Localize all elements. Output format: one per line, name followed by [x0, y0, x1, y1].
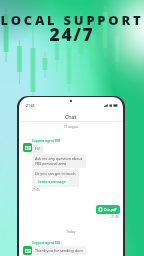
other: Support agent avatar	[23, 246, 32, 255]
staticText: Support agent FBS	[32, 241, 61, 245]
staticText: 10 august	[19, 125, 123, 129]
staticText: Ask me any question about FBS personal a…	[35, 156, 83, 166]
staticText: 21:45	[26, 103, 35, 108]
staticText: 24/7	[0, 22, 144, 46]
staticText: 21:46	[19, 215, 119, 219]
staticText: Chat	[65, 113, 77, 120]
other: Document	[98, 207, 103, 212]
staticText: LOCAL SUPPORT	[0, 11, 144, 29]
button[interactable]: Document	[96, 205, 120, 214]
staticText: Today	[19, 230, 123, 234]
button[interactable]: Hi!	[32, 144, 43, 153]
staticText: Support agent FBS	[32, 139, 61, 143]
staticText: Doc.pdf	[104, 207, 117, 212]
other: Support agent avatar	[23, 143, 32, 152]
staticText: 21:45	[32, 188, 40, 192]
staticText: Leave a message	[38, 179, 66, 184]
button[interactable]: Leave a message	[35, 178, 69, 185]
button[interactable]: Thank you for sending docs	[32, 246, 86, 255]
button[interactable]: Ask me any question about FBS personal a…	[32, 154, 86, 168]
staticText: Hi!	[35, 146, 40, 151]
button[interactable]: Or you can get in touch	[32, 169, 79, 187]
staticText: Or you can get in touch	[35, 171, 76, 176]
staticText: Thank you for sending docs	[35, 248, 83, 253]
